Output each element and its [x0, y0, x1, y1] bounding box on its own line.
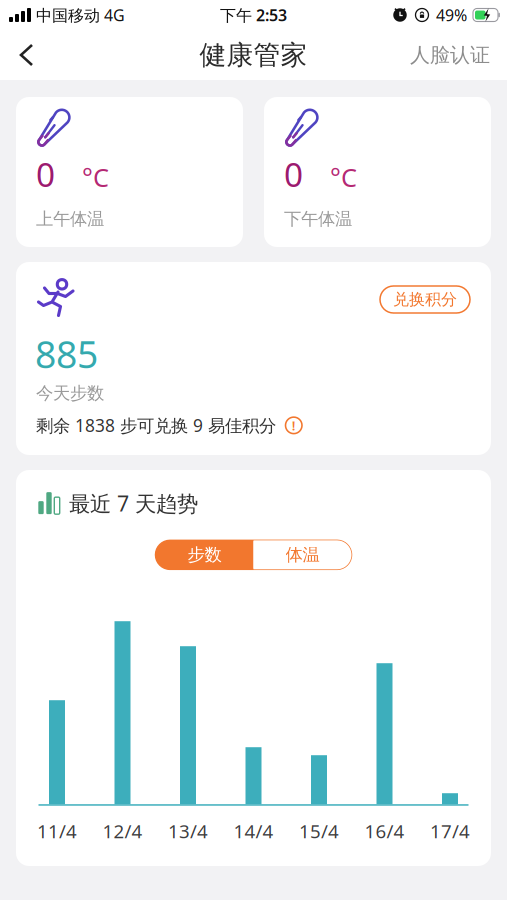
staticText: 剩余 1838 步可兑换 9 易佳积分 — [36, 414, 276, 437]
staticText: 49% — [436, 4, 467, 26]
button[interactable]: ! — [285, 417, 302, 434]
staticText: 兑换积分 — [393, 290, 457, 309]
button[interactable]: 体温 — [253, 540, 351, 569]
button[interactable]: 人脸认证 — [410, 33, 507, 77]
staticText: 13/4 — [168, 819, 208, 843]
staticText: 0 — [284, 152, 303, 196]
staticText: 步数 — [187, 544, 221, 565]
staticText: 下午 2:53 — [220, 4, 287, 26]
staticText: 今天步数 — [36, 383, 104, 404]
staticText: 11/4 — [37, 819, 77, 843]
staticText: 体温 — [285, 544, 319, 565]
staticText: 最近 7 天趋势 — [69, 489, 198, 517]
staticText: 中国移动 4G — [36, 4, 125, 26]
staticText: 上午体温 — [36, 208, 104, 230]
staticText: 885 — [35, 329, 98, 379]
staticText: 12/4 — [102, 819, 142, 843]
button[interactable] — [0, 31, 35, 79]
staticText: ! — [292, 416, 296, 434]
staticText: 16/4 — [364, 819, 404, 843]
button[interactable]: 步数 — [155, 540, 253, 569]
staticText: °C — [82, 160, 109, 194]
staticText: 0 — [36, 152, 55, 196]
staticText: 健康管家 — [199, 39, 307, 71]
staticText: °C — [330, 160, 357, 194]
button[interactable]: 兑换积分 — [380, 278, 491, 313]
staticText: 下午体温 — [284, 208, 352, 230]
staticText: 人脸认证 — [410, 43, 490, 67]
staticText: 15/4 — [299, 819, 339, 843]
staticText: 14/4 — [233, 819, 273, 843]
staticText: 17/4 — [430, 819, 470, 843]
